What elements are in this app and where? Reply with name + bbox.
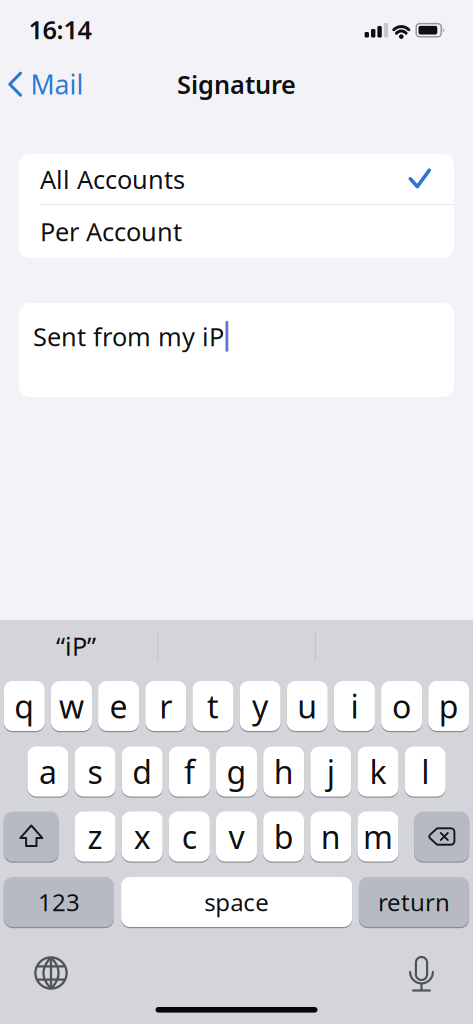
button[interactable]: “iP” bbox=[1, 620, 151, 672]
staticText: “iP” bbox=[56, 629, 96, 663]
staticText: t bbox=[207, 685, 219, 727]
button[interactable]: b bbox=[263, 811, 304, 861]
button[interactable]: j bbox=[310, 746, 351, 796]
staticText: All Accounts bbox=[40, 162, 185, 196]
button[interactable]: 123 bbox=[4, 877, 114, 927]
button[interactable]: s bbox=[75, 746, 116, 796]
button[interactable]: g bbox=[216, 746, 257, 796]
staticText: f bbox=[184, 750, 195, 793]
staticText: s bbox=[88, 750, 103, 793]
staticText: k bbox=[369, 750, 386, 793]
staticText: Signature bbox=[177, 67, 296, 101]
button[interactable]: Back bbox=[8, 66, 83, 102]
staticText: l bbox=[421, 750, 429, 793]
staticText: z bbox=[87, 815, 102, 858]
button[interactable]: i bbox=[334, 681, 375, 731]
staticText: n bbox=[321, 815, 341, 858]
staticText: w bbox=[59, 685, 84, 727]
button[interactable]: m bbox=[357, 811, 398, 861]
staticText: v bbox=[228, 815, 244, 858]
staticText: return bbox=[378, 886, 450, 918]
staticText: 123 bbox=[38, 886, 80, 918]
button[interactable]: h bbox=[263, 746, 304, 796]
button[interactable]: u bbox=[287, 681, 328, 731]
staticText: d bbox=[132, 750, 152, 793]
staticText: x bbox=[134, 815, 151, 858]
button[interactable]: t bbox=[192, 681, 233, 731]
staticText: p bbox=[439, 685, 459, 727]
button[interactable]: n bbox=[310, 811, 351, 861]
staticText: h bbox=[274, 750, 294, 793]
button[interactable]: Next keyboard bbox=[29, 951, 73, 995]
button[interactable]: r bbox=[145, 681, 186, 731]
button[interactable]: Dictation bbox=[399, 952, 443, 996]
staticText: Mail bbox=[30, 66, 83, 102]
button[interactable]: v bbox=[216, 811, 257, 861]
staticText: c bbox=[182, 815, 197, 858]
button[interactable]: a bbox=[27, 746, 68, 796]
staticText: Sent from my iP bbox=[33, 319, 224, 353]
button[interactable]: Sent from my iP bbox=[19, 303, 454, 397]
button[interactable]: c bbox=[169, 811, 210, 861]
staticText: r bbox=[159, 685, 172, 727]
button[interactable]: e bbox=[98, 681, 139, 731]
button[interactable]: Per Account bbox=[40, 206, 454, 256]
button[interactable]: l bbox=[405, 746, 446, 796]
button[interactable]: p bbox=[428, 681, 469, 731]
button[interactable]: d bbox=[122, 746, 163, 796]
button[interactable]: All Accounts bbox=[40, 154, 454, 204]
staticText: q bbox=[14, 685, 34, 727]
staticText: e bbox=[110, 685, 128, 727]
staticText: o bbox=[392, 685, 411, 727]
button[interactable]: f bbox=[169, 746, 210, 796]
button[interactable]: w bbox=[51, 681, 92, 731]
button[interactable]: Shift bbox=[4, 811, 59, 861]
staticText: 16:14 bbox=[28, 13, 91, 46]
button[interactable]: y bbox=[240, 681, 281, 731]
staticText: b bbox=[274, 815, 294, 858]
staticText: u bbox=[297, 685, 317, 727]
button[interactable]: x bbox=[122, 811, 163, 861]
staticText: Per Account bbox=[40, 215, 182, 248]
button[interactable]: return bbox=[359, 877, 469, 927]
staticText: i bbox=[350, 685, 358, 727]
button[interactable]: Delete bbox=[414, 811, 469, 861]
button[interactable]: o bbox=[381, 681, 422, 731]
staticText: j bbox=[327, 750, 335, 793]
button[interactable]: z bbox=[74, 811, 115, 861]
button[interactable]: space bbox=[121, 877, 352, 927]
staticText: g bbox=[226, 750, 246, 793]
staticText: a bbox=[39, 750, 57, 793]
button[interactable]: q bbox=[4, 681, 45, 731]
button[interactable]: k bbox=[357, 746, 398, 796]
staticText: y bbox=[252, 685, 268, 727]
staticText: space bbox=[204, 886, 269, 918]
staticText: m bbox=[363, 815, 393, 858]
